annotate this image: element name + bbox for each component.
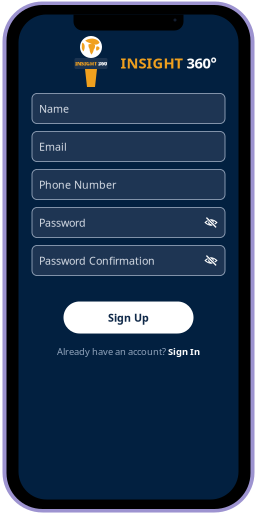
staticText: Email (39, 139, 67, 154)
button[interactable]: Password Confirmation (32, 245, 225, 275)
button[interactable]: Already have an account? (57, 344, 200, 358)
staticText: Phone Number (39, 177, 116, 192)
button[interactable]: Password (32, 207, 225, 237)
staticText: Sign In (168, 345, 200, 358)
staticText: INSIGHT (75, 60, 97, 67)
staticText: 360° (182, 53, 216, 72)
staticText: INSIGHT (120, 53, 182, 72)
staticText: Sign Up (108, 310, 149, 325)
button[interactable]: Sign Up (63, 301, 193, 333)
button[interactable]: Phone Number (32, 169, 225, 199)
staticText: Password (39, 215, 86, 230)
button[interactable]: Name (32, 93, 225, 123)
staticText: Name (39, 101, 69, 116)
staticText: Already have an account? (57, 345, 168, 358)
staticText: 360 (98, 60, 107, 67)
button[interactable]: Email (32, 131, 225, 161)
staticText: Password Confirmation (39, 253, 155, 268)
